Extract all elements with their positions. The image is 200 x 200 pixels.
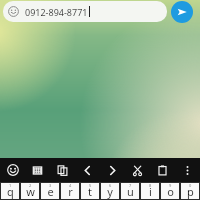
button[interactable]: Send: [171, 1, 193, 23]
staticText: 3: [49, 183, 52, 188]
staticText: t: [88, 184, 92, 199]
staticText: 0: [189, 183, 192, 188]
button[interactable]: 0912-894-8771: [3, 1, 167, 22]
button[interactable]: 7: [121, 183, 139, 199]
button[interactable]: Previous: [75, 158, 100, 182]
staticText: 7: [129, 183, 132, 188]
button[interactable]: 0: [181, 183, 199, 199]
button[interactable]: 4: [61, 183, 79, 199]
button[interactable]: 8: [141, 183, 159, 199]
button[interactable]: Next: [100, 158, 125, 182]
button[interactable]: 1: [1, 183, 19, 199]
staticText: 4: [69, 183, 72, 188]
button[interactable]: 9: [161, 183, 179, 199]
staticText: 5: [89, 183, 92, 188]
staticText: e: [47, 184, 54, 199]
button[interactable]: 3: [41, 183, 59, 199]
staticText: u: [127, 184, 134, 199]
staticText: 8: [149, 183, 152, 188]
button[interactable]: Copy: [50, 158, 75, 182]
staticText: 2: [29, 183, 32, 188]
staticText: p: [187, 184, 194, 199]
staticText: i: [149, 184, 152, 199]
button[interactable]: 2: [21, 183, 39, 199]
staticText: r: [68, 184, 73, 199]
staticText: 1: [9, 183, 12, 188]
button[interactable]: Keyboard: [25, 158, 50, 182]
staticText: q: [7, 184, 14, 199]
staticText: o: [167, 184, 174, 199]
staticText: 6: [109, 183, 112, 188]
button[interactable]: Emoji: [0, 158, 25, 182]
button[interactable]: More options: [175, 158, 200, 182]
staticText: y: [107, 184, 113, 199]
staticText: 9: [169, 183, 172, 188]
button[interactable]: Paste: [150, 158, 175, 182]
staticText: 0912-894-8771: [25, 6, 88, 18]
button[interactable]: Cut: [125, 158, 150, 182]
staticText: w: [26, 184, 35, 199]
button[interactable]: 5: [81, 183, 99, 199]
button[interactable]: 6: [101, 183, 119, 199]
